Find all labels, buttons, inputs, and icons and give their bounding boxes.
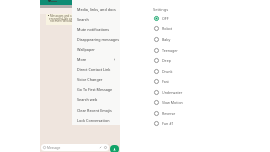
button[interactable]: Voice Changer: [72, 74, 120, 84]
button[interactable]: Teenager: [154, 45, 214, 56]
button[interactable]: Search web: [72, 94, 120, 104]
staticText: not even WhatsApp, can read or listen: [50, 19, 102, 23]
button[interactable]: Baby: [154, 34, 214, 45]
staticText: Messages and calls are end-to-end: [50, 14, 97, 18]
button[interactable]: Drunk: [154, 66, 214, 77]
staticText: Voice Changer: [77, 77, 103, 82]
staticText: Reverse: [162, 111, 176, 116]
other: Attach: [99, 146, 102, 149]
staticText: Direct Contact Link: [77, 67, 111, 72]
staticText: OFF: [162, 16, 169, 21]
staticText: Slow Motion: [162, 100, 183, 105]
button[interactable]: Search: [72, 14, 120, 24]
button[interactable]: Disappearing messages: [72, 34, 120, 44]
button[interactable]: Wallpaper: [72, 44, 120, 54]
staticText: Deep: [162, 58, 171, 63]
staticText: Search web: [77, 97, 98, 102]
staticText: Search: [77, 17, 89, 22]
button[interactable]: Record voice message: [110, 145, 119, 152]
button[interactable]: Mute notifications: [72, 24, 120, 34]
button[interactable]: OFF: [154, 13, 214, 24]
button[interactable]: Direct Contact Link: [72, 64, 120, 74]
staticText: Disappearing messages: [77, 37, 119, 42]
button[interactable]: Robot: [154, 23, 214, 34]
staticText: Settings: [153, 7, 169, 12]
staticText: Message: [47, 146, 61, 150]
staticText: Media, links, and docs: [77, 7, 116, 12]
other: Camera: [104, 146, 107, 149]
button[interactable]: Slow Motion: [154, 97, 214, 108]
staticText: Mute notifications: [77, 27, 110, 32]
staticText: Go To First Message: [77, 87, 113, 92]
button[interactable]: Media, links, and docs: [72, 4, 120, 14]
staticText: More: [77, 57, 87, 62]
button[interactable]: Clear Recent Emojis: [72, 105, 120, 115]
staticText: Clear Recent Emojis: [77, 108, 112, 113]
staticText: Teenager: [162, 48, 178, 53]
staticText: Drunk: [162, 69, 173, 74]
button[interactable]: Lock Conversation: [72, 115, 120, 125]
button[interactable]: Fast: [154, 76, 214, 87]
button[interactable]: Deep: [154, 55, 214, 66]
staticText: Baby: [162, 37, 171, 42]
button[interactable]: Message: [41, 144, 109, 151]
button[interactable]: Go To First Message: [72, 84, 120, 94]
button[interactable]: Fun #1: [154, 118, 214, 129]
staticText: Robot: [162, 26, 173, 31]
staticText: Fast: [162, 79, 169, 84]
button[interactable]: Reverse: [154, 108, 214, 119]
staticText: Wallpaper: [77, 47, 95, 52]
staticText: Lock Conversation: [77, 118, 110, 123]
button[interactable]: Underwater: [154, 87, 214, 98]
staticText: Fun #1: [162, 121, 174, 126]
staticText: encrypted. No one outside of this chat,: [49, 17, 102, 21]
staticText: Underwater: [162, 90, 183, 95]
button[interactable]: More: [72, 54, 120, 64]
